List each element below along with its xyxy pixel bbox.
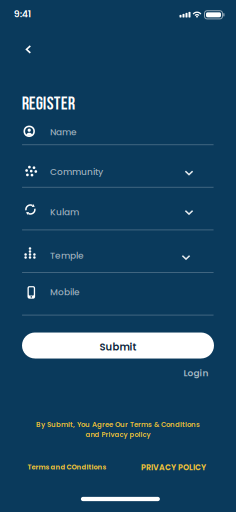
staticText: and Privacy policy <box>85 430 150 439</box>
staticText: Login <box>183 367 208 379</box>
staticText: Terms and COnditions <box>27 462 106 472</box>
staticText: By Submit, You Agree Our Terms & Conditi… <box>36 420 200 429</box>
button[interactable]: Back <box>17 38 39 60</box>
staticText: Name <box>50 126 77 138</box>
button[interactable]: Community <box>0 145 236 188</box>
button[interactable]: PRIVACY POLICY <box>141 462 206 473</box>
button[interactable]: Terms and COnditions <box>27 462 106 472</box>
staticText: Submit <box>99 340 136 354</box>
button[interactable]: Mobile <box>0 273 236 316</box>
staticText: Temple <box>50 249 84 262</box>
staticText: 9:41 <box>14 7 31 21</box>
staticText: Kulam <box>50 206 79 218</box>
button[interactable]: Login <box>183 367 208 379</box>
button[interactable]: Name <box>0 103 236 145</box>
staticText: PRIVACY POLICY <box>141 462 206 473</box>
staticText: REGISTER <box>22 93 75 115</box>
staticText: Mobile <box>50 286 80 298</box>
button[interactable]: Submit <box>22 332 214 358</box>
button[interactable]: Temple <box>0 230 236 273</box>
staticText: Community <box>50 165 103 178</box>
button[interactable]: Kulam <box>0 188 236 230</box>
